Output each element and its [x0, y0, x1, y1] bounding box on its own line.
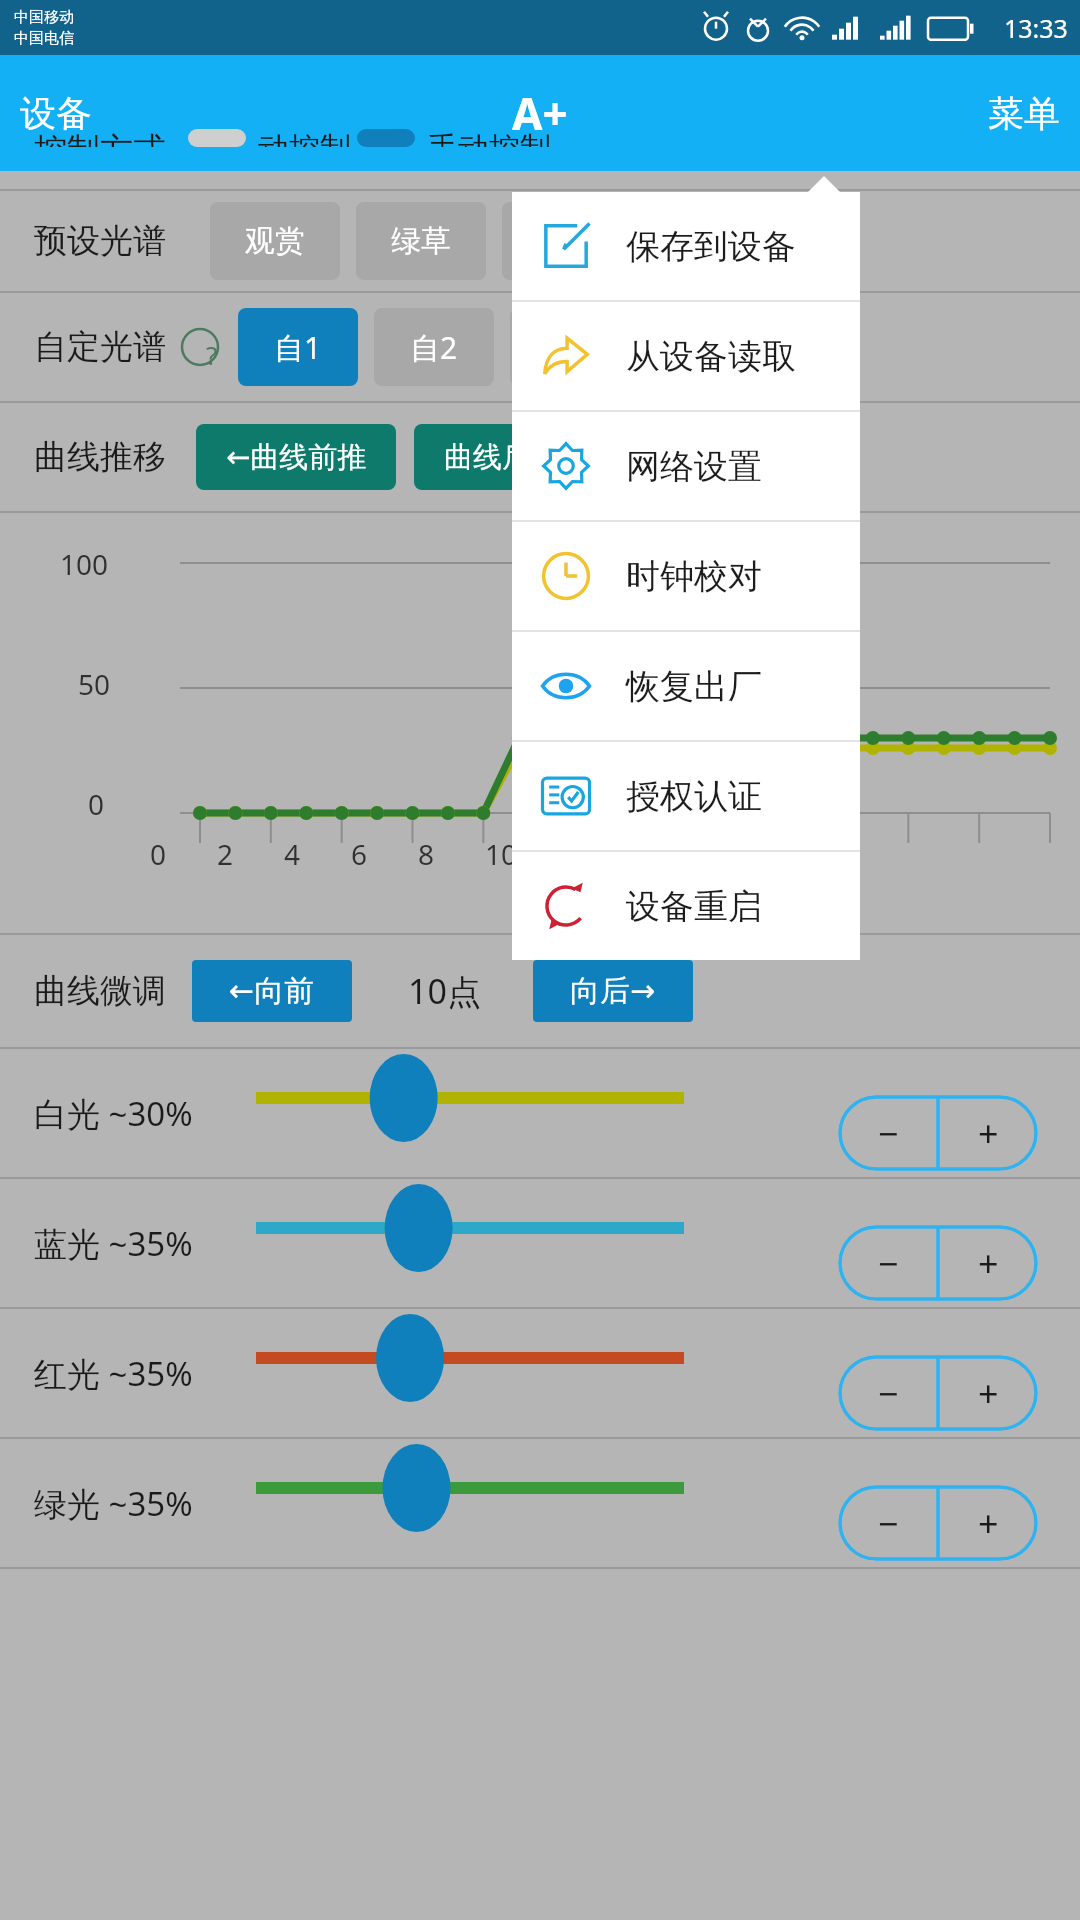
button[interactable]: 设备 [0, 81, 112, 146]
button[interactable]: 增加 红光 ~35% [938, 1355, 1038, 1431]
staticText: 曲线后推→ [444, 439, 585, 476]
button[interactable]: 时钟校对 [512, 522, 860, 630]
button[interactable]: 从设备读取 [512, 302, 860, 410]
staticText: ←曲线前推 [226, 439, 367, 476]
staticText: 网络设置 [626, 445, 762, 488]
button[interactable]: 蓝光 ~35% [250, 1193, 690, 1263]
button[interactable]: 恢复出厂 [512, 632, 860, 740]
button[interactable]: 白光 ~30% [250, 1063, 690, 1133]
button[interactable]: 减少 蓝光 ~35% [838, 1225, 938, 1301]
staticText: 授权认证 [626, 775, 762, 818]
staticText: 保存到设备 [626, 225, 796, 268]
staticText: ←向前 [229, 972, 315, 1010]
staticText: 设备重启 [626, 885, 762, 928]
staticText: 50 [78, 665, 111, 703]
button[interactable]: ←向前 [192, 960, 352, 1022]
staticText: 13:33 [1004, 11, 1068, 45]
staticText: − [878, 1369, 899, 1418]
button[interactable]: 观赏 [210, 202, 340, 280]
button[interactable]: ←曲线前推 [196, 424, 396, 490]
button[interactable]: 增加 蓝光 ~35% [938, 1225, 1038, 1301]
staticText: 绿光 ~35% [34, 1481, 193, 1526]
staticText: 向后→ [570, 972, 656, 1010]
staticText: + [978, 1109, 999, 1158]
staticText: 设备 [20, 91, 92, 136]
staticText: 2 [217, 835, 234, 873]
button[interactable]: 红光 ~35% [250, 1323, 690, 1393]
button[interactable]: 水草 [502, 202, 632, 280]
staticText: − [878, 1109, 899, 1158]
staticText: 100 [60, 545, 109, 583]
button[interactable]: 保存到设备 [512, 192, 860, 300]
staticText: 观赏 [245, 222, 305, 260]
button[interactable]: 菜单 [968, 81, 1080, 146]
staticText: 0 [88, 785, 105, 823]
button[interactable]: 自2 [374, 308, 494, 386]
staticText: 中国移动 [14, 8, 74, 27]
button[interactable]: 网络设置 [512, 412, 860, 520]
staticText: 10点 [408, 968, 481, 1014]
staticText: 时钟校对 [626, 555, 762, 598]
staticText: 绿草 [391, 222, 451, 260]
staticText: 6 [351, 835, 368, 873]
button[interactable]: 减少 白光 ~30% [838, 1095, 938, 1171]
staticText: 红光 ~35% [34, 1351, 193, 1396]
button[interactable]: 增加 白光 ~30% [938, 1095, 1038, 1171]
staticText: 从设备读取 [626, 335, 796, 378]
staticText: + [978, 1499, 999, 1548]
staticText: 自定光谱 [34, 326, 166, 368]
button[interactable]: 自1 [238, 308, 358, 386]
button[interactable]: 授权认证 [512, 742, 860, 850]
staticText: 动控制 [258, 129, 351, 147]
button[interactable]: 曲线后推→ [414, 424, 614, 490]
staticText: 白光 ~30% [34, 1091, 193, 1136]
staticText: 控制方式 [34, 129, 166, 147]
staticText: + [978, 1239, 999, 1288]
staticText: 自2 [410, 327, 458, 368]
staticText: 中国电信 [14, 29, 74, 48]
staticText: 菜单 [988, 91, 1060, 136]
staticText: 曲线微调 [34, 970, 166, 1012]
button[interactable]: 减少 绿光 ~35% [838, 1485, 938, 1561]
staticText: 10 [485, 835, 518, 873]
staticText: ? [206, 337, 218, 372]
staticText: 恢复出厂 [626, 665, 762, 708]
staticText: 水草 [537, 222, 597, 260]
staticText: 8 [418, 835, 435, 873]
staticText: 自3 [546, 327, 594, 368]
staticText: − [878, 1499, 899, 1548]
staticText: 12 [552, 835, 585, 873]
button[interactable]: 自3 [510, 308, 630, 386]
staticText: 自1 [274, 327, 322, 368]
button[interactable]: 绿草 [356, 202, 486, 280]
staticText: 蓝光 ~35% [34, 1221, 193, 1266]
button[interactable]: 向后→ [533, 960, 693, 1022]
button[interactable]: 减少 红光 ~35% [838, 1355, 938, 1431]
staticText: + [978, 1369, 999, 1418]
button[interactable]: 绿光 ~35% [250, 1453, 690, 1523]
staticText: 0 [150, 835, 167, 873]
staticText: 手动控制 [427, 129, 551, 147]
staticText: A+ [512, 83, 568, 143]
button[interactable]: 设备重启 [512, 852, 860, 960]
staticText: 曲线推移 [34, 436, 166, 478]
staticText: 4 [284, 835, 301, 873]
staticText: 预设光谱 [34, 220, 166, 262]
staticText: − [878, 1239, 899, 1288]
button[interactable]: 增加 绿光 ~35% [938, 1485, 1038, 1561]
